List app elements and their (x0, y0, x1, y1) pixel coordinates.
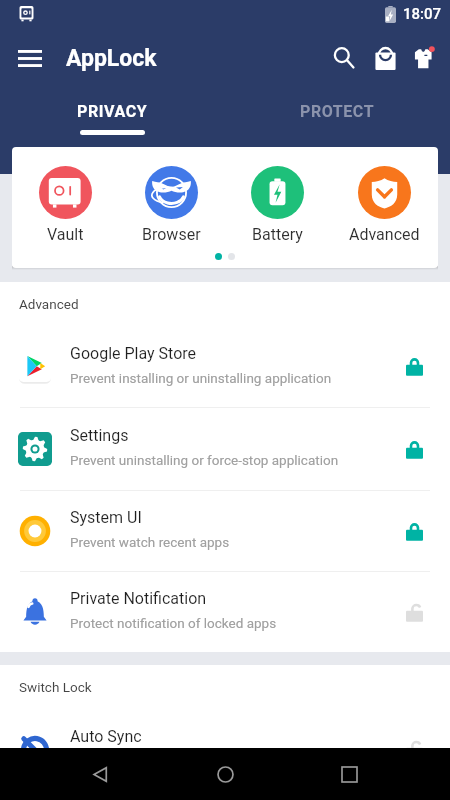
staticText: Prevent uninstalling or force-stop appli… (70, 452, 339, 468)
staticText: Vault (47, 225, 84, 244)
button[interactable]: PROTECT (225, 88, 450, 138)
button[interactable]: Private Notification (0, 572, 450, 652)
staticText: Auto Sync (70, 727, 142, 746)
button[interactable]: Vault (12, 166, 118, 244)
button[interactable]: Open navigation menu (8, 36, 52, 80)
button[interactable]: PRIVACY (0, 88, 225, 138)
button[interactable]: Advanced (331, 166, 438, 244)
staticText: Private Notification (70, 589, 207, 608)
staticText: Prevent switching auto sync (70, 753, 238, 769)
button[interactable]: Browser (118, 166, 224, 244)
staticText: Browser (142, 225, 201, 244)
button[interactable]: Back (78, 752, 122, 796)
button[interactable]: Search (322, 36, 366, 80)
button[interactable]: System UI (0, 491, 450, 571)
staticText: PROTECT (300, 102, 375, 121)
button[interactable]: Battery (224, 166, 331, 244)
staticText: Prevent installing or uninstalling appli… (70, 370, 332, 386)
staticText: System UI (70, 508, 142, 527)
staticText: PRIVACY (77, 102, 148, 121)
staticText: Switch Lock (19, 679, 92, 695)
button[interactable]: Settings (0, 408, 450, 490)
button[interactable]: Auto Sync (0, 709, 450, 790)
staticText: Battery (252, 225, 303, 244)
button[interactable]: Themes (401, 36, 445, 80)
staticText: Advanced (19, 296, 79, 312)
staticText: Google Play Store (70, 344, 197, 363)
staticText: AppLock (66, 45, 157, 72)
staticText: Advanced (349, 225, 420, 244)
staticText: Prevent watch recent apps (70, 534, 230, 550)
button[interactable]: Store (363, 36, 407, 80)
button[interactable]: Google Play Store (0, 326, 450, 407)
staticText: 18:07 (403, 5, 442, 23)
button[interactable]: Recent apps (327, 752, 371, 796)
staticText: Settings (70, 426, 129, 445)
staticText: Protect notification of locked apps (70, 615, 277, 631)
button[interactable]: Home (203, 752, 247, 796)
